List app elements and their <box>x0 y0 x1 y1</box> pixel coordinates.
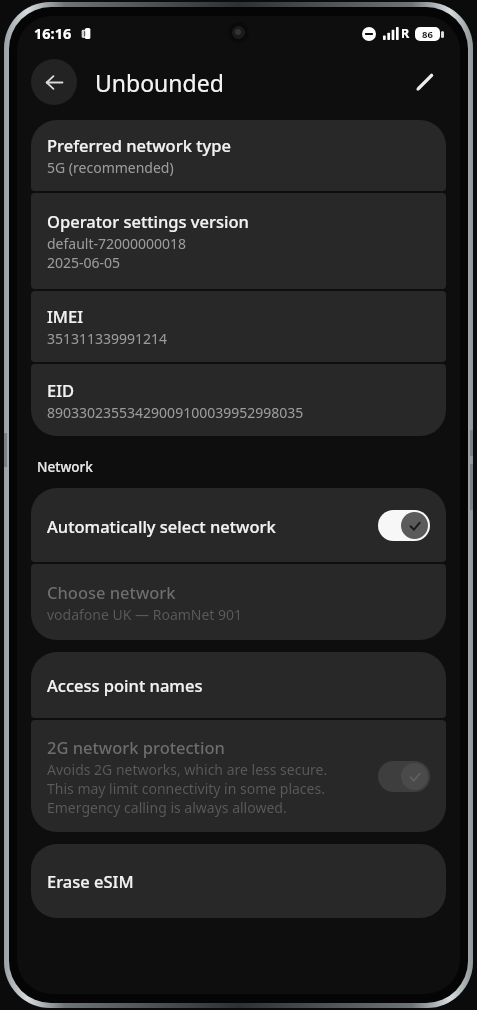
staticText: Operator settings version <box>47 210 249 232</box>
staticText: Emergency calling is always allowed. <box>47 798 287 817</box>
staticText: Preferred network type <box>47 134 231 156</box>
button[interactable]: Back <box>31 59 77 105</box>
staticText: 2025-06-05 <box>47 253 121 272</box>
button[interactable]: Automatically select network <box>31 488 446 562</box>
staticText: 89033023553429009100039952998035 <box>47 403 304 422</box>
staticText: vodafone UK — RoamNet 901 <box>47 605 243 624</box>
button[interactable]: 2G network protection <box>31 720 446 832</box>
staticText: Unbounded <box>95 67 404 98</box>
button[interactable]: IMEI <box>31 291 446 362</box>
button[interactable]: EID <box>31 364 446 436</box>
staticText: R <box>401 25 410 42</box>
button[interactable]: Choose network <box>31 564 446 640</box>
staticText: Erase eSIM <box>47 870 134 892</box>
button[interactable]: Erase eSIM <box>31 844 446 918</box>
staticText: Automatically select network <box>47 515 378 537</box>
staticText: 16:16 <box>34 23 72 43</box>
staticText: This may limit connectivity in some plac… <box>47 779 325 798</box>
staticText: 351311339991214 <box>47 329 168 348</box>
staticText: IMEI <box>47 305 84 327</box>
button[interactable]: Edit <box>404 61 446 103</box>
staticText: Choose network <box>47 581 176 603</box>
staticText: 5G (recommended) <box>47 158 174 177</box>
button[interactable]: Access point names <box>31 652 446 718</box>
button[interactable]: Toggle <box>378 510 430 541</box>
staticText: Network <box>37 458 93 476</box>
staticText: EID <box>47 379 75 401</box>
button[interactable]: Preferred network type <box>31 120 446 191</box>
button[interactable]: Operator settings version <box>31 193 446 289</box>
staticText: Avoids 2G networks, which are less secur… <box>47 760 328 779</box>
staticText: Access point names <box>47 674 203 696</box>
staticText: 2G network protection <box>47 736 225 758</box>
staticText: 86 <box>422 28 433 41</box>
staticText: default-72000000018 <box>47 234 187 253</box>
button[interactable]: Toggle <box>378 761 430 792</box>
